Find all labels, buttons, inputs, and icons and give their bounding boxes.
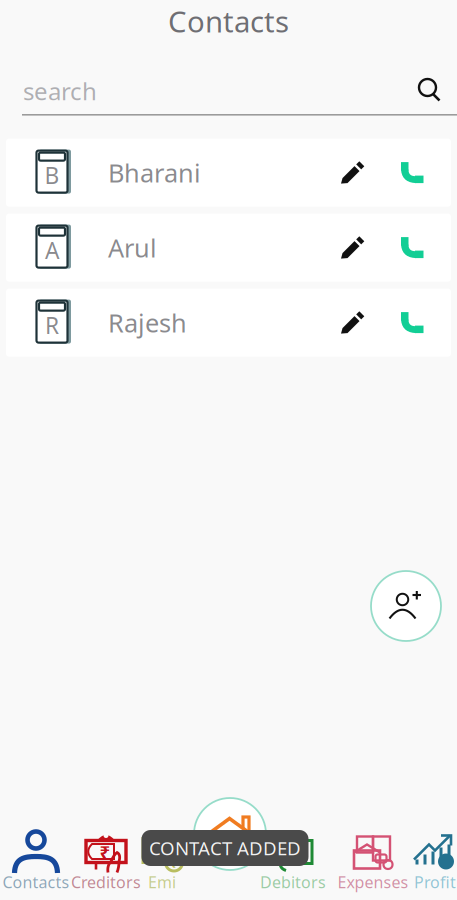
staticText: e [222, 823, 238, 861]
button[interactable]: ₹ [137, 830, 187, 891]
staticText: Expenses [337, 871, 408, 893]
staticText: Debitors [260, 871, 326, 893]
staticText: Rajesh [108, 306, 187, 339]
button[interactable]: R [6, 289, 451, 357]
button[interactable]: B [6, 139, 451, 207]
staticText: ₹ [170, 854, 178, 871]
staticText: Arul [108, 231, 157, 264]
button[interactable]: ₹ [257, 830, 329, 891]
staticText: Creditors [71, 871, 141, 893]
staticText: ₹ [288, 840, 297, 862]
staticText: CONTACT ADDED [149, 836, 301, 860]
button[interactable]: Home [192, 796, 268, 872]
staticText: R [45, 310, 59, 340]
button[interactable]: Profit [409, 830, 457, 891]
staticText: A [45, 235, 59, 265]
staticText: Contacts [2, 871, 69, 893]
button[interactable]: Expenses [330, 830, 416, 891]
staticText: Bharani [108, 156, 201, 189]
staticText: Emi [148, 871, 176, 893]
staticText: search [23, 75, 97, 107]
staticText: ₹ [99, 840, 110, 865]
staticText: B [44, 160, 59, 190]
staticText: Profit [414, 871, 456, 893]
button[interactable]: Add contact [369, 569, 443, 643]
button[interactable]: Contacts [0, 830, 73, 891]
button[interactable]: A [6, 214, 451, 282]
button[interactable]: ₹ [68, 830, 144, 891]
staticText: Contacts [168, 1, 289, 40]
